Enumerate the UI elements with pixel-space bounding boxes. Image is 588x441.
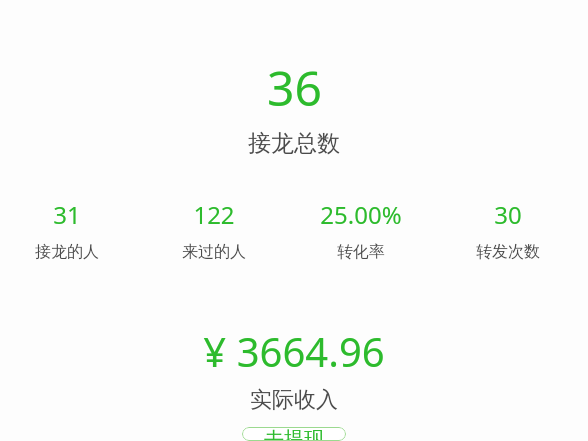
button[interactable]: 122 bbox=[140, 198, 287, 262]
staticText: 36 bbox=[267, 55, 322, 120]
staticText: 实际收入 bbox=[250, 386, 338, 414]
button[interactable]: 去提现 bbox=[242, 427, 346, 441]
staticText: 去提现 bbox=[264, 427, 324, 441]
staticText: 122 bbox=[193, 198, 235, 231]
button[interactable]: 25.00% bbox=[287, 198, 434, 262]
staticText: 31 bbox=[53, 198, 81, 231]
staticText: 接龙的人 bbox=[35, 242, 99, 262]
button[interactable]: 31 bbox=[0, 198, 140, 262]
staticText: 转发次数 bbox=[476, 242, 540, 262]
staticText: 转化率 bbox=[337, 242, 385, 262]
staticText: ¥ 3664.96 bbox=[203, 324, 385, 378]
staticText: 25.00% bbox=[320, 198, 402, 231]
button[interactable]: 30 bbox=[434, 198, 581, 262]
staticText: 接龙总数 bbox=[248, 129, 340, 158]
staticText: 来过的人 bbox=[182, 242, 246, 262]
staticText: 30 bbox=[494, 198, 522, 231]
